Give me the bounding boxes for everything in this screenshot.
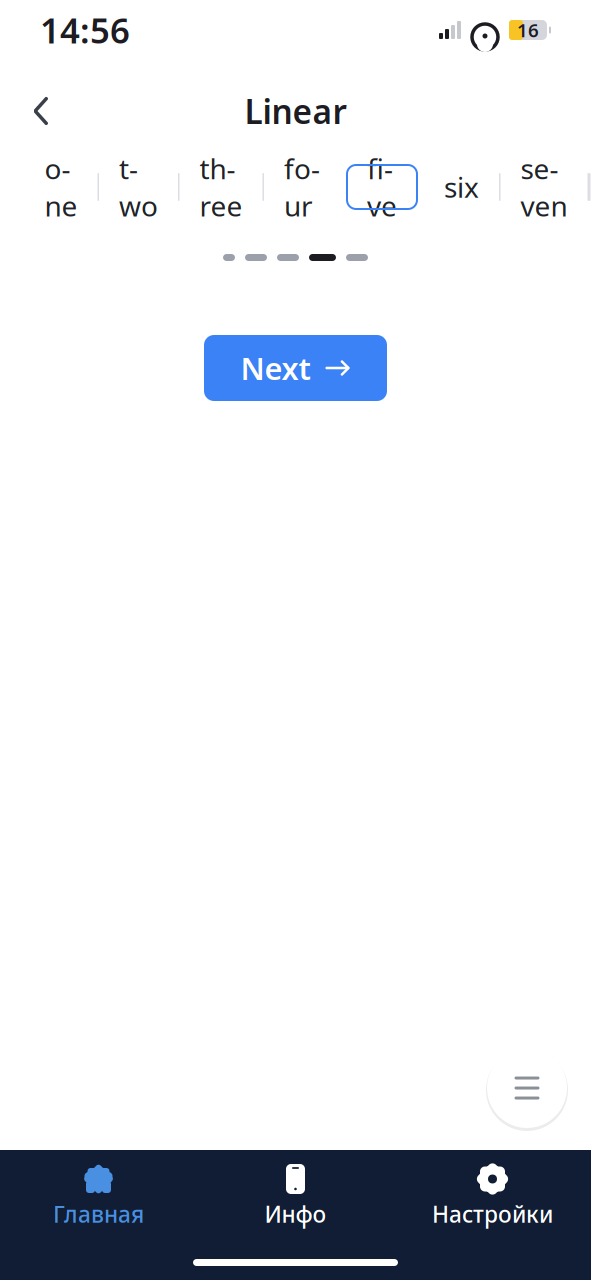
button[interactable]: six [424,165,499,209]
button[interactable]: Главная [0,1150,197,1239]
button[interactable]: four [264,165,340,209]
button[interactable]: one [24,165,97,209]
button[interactable]: Menu [485,1046,569,1130]
button[interactable]: Инфо [197,1150,394,1239]
button[interactable]: three [179,165,262,209]
staticText: three [199,150,242,224]
button[interactable]: five [340,165,424,209]
staticText: four [284,150,320,224]
staticText: Next [240,348,310,388]
staticText: one [44,150,77,224]
staticText: seven [520,150,567,224]
staticText: five [367,150,397,224]
staticText: 16 [517,18,539,42]
staticText: Инфо [264,1199,326,1229]
button[interactable]: Next [204,335,387,401]
button[interactable]: seven [500,165,587,209]
staticText: Главная [53,1199,144,1229]
button[interactable]: Настройки [394,1150,591,1239]
button[interactable]: two [99,165,178,209]
staticText: six [444,168,479,206]
staticText: Linear [244,89,346,133]
staticText: 14:56 [40,7,130,53]
button[interactable]: Back [14,86,68,136]
staticText: Настройки [432,1199,553,1229]
staticText: two [119,150,158,224]
